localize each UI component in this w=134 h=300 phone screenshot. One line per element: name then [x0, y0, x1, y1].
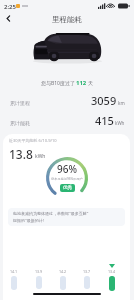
staticText: 您与B10度过了 [41, 80, 75, 87]
staticText: 112 [76, 79, 87, 87]
staticText: 415 [95, 113, 114, 128]
staticText: 3059 [91, 93, 117, 108]
staticText: 96% [57, 162, 77, 176]
staticText: 13.8 [9, 146, 33, 162]
staticText: 里程能耗 [52, 15, 82, 24]
staticText: 您本月超过96%的用户 [51, 177, 83, 181]
staticText: kWh [115, 120, 125, 126]
staticText: 近30天平均能耗 6/10-9/10 [9, 138, 57, 143]
staticText: 13.4 [108, 269, 116, 274]
staticText: 13.7 [83, 269, 91, 274]
staticText: kWh [35, 153, 46, 160]
staticText: 13.9 [35, 269, 43, 274]
staticText: 14.1 [10, 269, 18, 274]
staticText: km [118, 100, 125, 106]
staticText: 2:25 [4, 3, 16, 11]
staticText: 优秀 [63, 185, 72, 191]
button[interactable]: Back [2, 12, 15, 25]
staticText: 14.2 [59, 269, 67, 274]
staticText: 天 [88, 80, 93, 86]
staticText: 累计能耗 [10, 120, 30, 126]
staticText: 电池衰减约为整体通过，单数据"最多互解" 提振的"最新的计! [13, 211, 89, 223]
staticText: 累计里程 [10, 100, 30, 106]
